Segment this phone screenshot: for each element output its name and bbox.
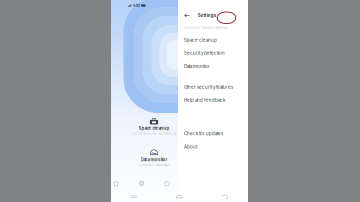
- button[interactable]: Manager: [103, 179, 128, 188]
- button[interactable]: Help and Feedback: [178, 94, 315, 107]
- button[interactable]: Data monitor: [85, 149, 222, 167]
- button[interactable]: Other security features: [178, 80, 315, 94]
- staticText: Other security features: [184, 84, 233, 90]
- staticText: Ga 9%: [177, 87, 187, 91]
- button[interactable]: Cleanup: [128, 179, 154, 188]
- staticText: 4:02: [133, 3, 140, 8]
- staticText: 1.26 GB space will be freed up: [131, 132, 176, 135]
- button[interactable]: About: [178, 140, 315, 153]
- button[interactable]: Home: [157, 192, 202, 202]
- staticText: Data monitor: [184, 64, 210, 69]
- staticText: Space cleanup: [184, 37, 217, 43]
- staticText: Data monitor: [140, 157, 167, 162]
- button[interactable]: Back: [183, 10, 191, 20]
- button[interactable]: Discover: [154, 179, 179, 188]
- button[interactable]: Back: [202, 192, 248, 202]
- button[interactable]: Check for updates: [178, 127, 315, 140]
- button[interactable]: Data monitor: [178, 60, 315, 73]
- button[interactable]: Security detection: [178, 47, 315, 60]
- button[interactable]: Space cleanup: [85, 118, 222, 135]
- staticText: Functional Module Settings: [184, 25, 228, 30]
- staticText: Help and Feedback: [184, 97, 225, 103]
- staticText: Security detection: [184, 51, 225, 56]
- staticText: Check your data usage: [138, 163, 169, 167]
- staticText: Check for updates: [184, 131, 223, 136]
- staticText: Settings: [198, 13, 216, 18]
- button[interactable]: Recents: [111, 192, 157, 202]
- staticText: Space cleanup: [138, 126, 169, 131]
- staticText: About: [184, 144, 197, 149]
- button[interactable]: Space cleanup: [178, 34, 315, 47]
